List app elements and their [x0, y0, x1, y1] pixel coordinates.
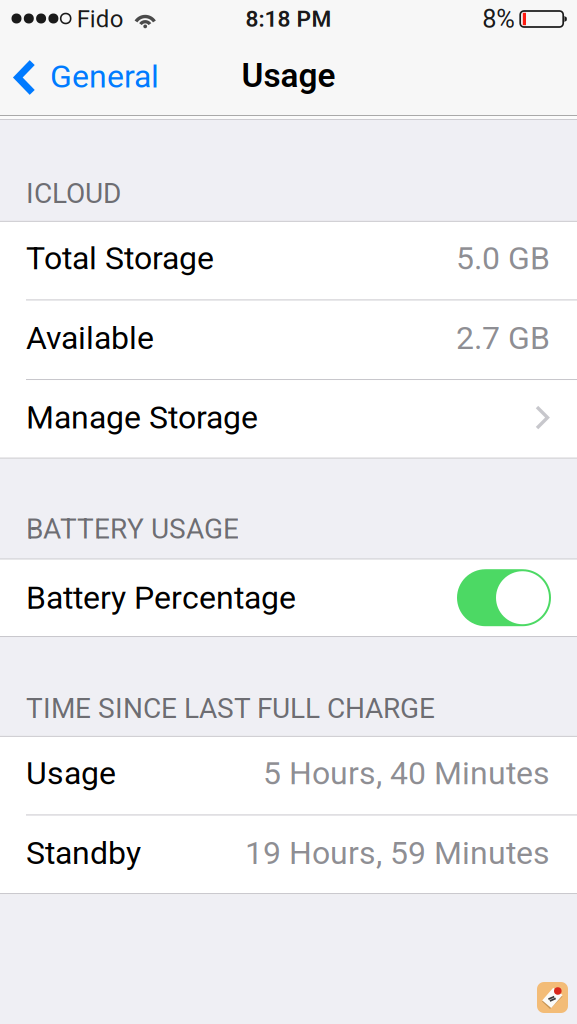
button[interactable]: Manage Storage [0, 380, 577, 459]
staticText: Available [26, 319, 154, 357]
button[interactable]: General [0, 40, 171, 115]
staticText: ICLOUD [26, 177, 121, 210]
staticText: Fido [77, 5, 124, 33]
staticText: 2.7 GB [456, 319, 550, 357]
staticText: General [50, 58, 159, 95]
staticText: 19 Hours, 59 Minutes [245, 834, 550, 872]
staticText: Usage [26, 755, 116, 792]
button[interactable]: Battery Percentage [457, 569, 551, 626]
staticText: BATTERY USAGE [26, 513, 239, 545]
staticText: 5 Hours, 40 Minutes [263, 755, 550, 792]
staticText: Battery Percentage [26, 579, 296, 616]
staticText: 8% [482, 4, 515, 34]
staticText: TIME SINCE LAST FULL CHARGE [26, 692, 435, 725]
staticText: 8:18 PM [245, 6, 331, 32]
staticText: Manage Storage [26, 399, 258, 436]
staticText: 5.0 GB [456, 240, 550, 277]
staticText: Total Storage [26, 240, 214, 277]
staticText: Standby [26, 834, 141, 872]
staticText: Usage [241, 56, 335, 95]
